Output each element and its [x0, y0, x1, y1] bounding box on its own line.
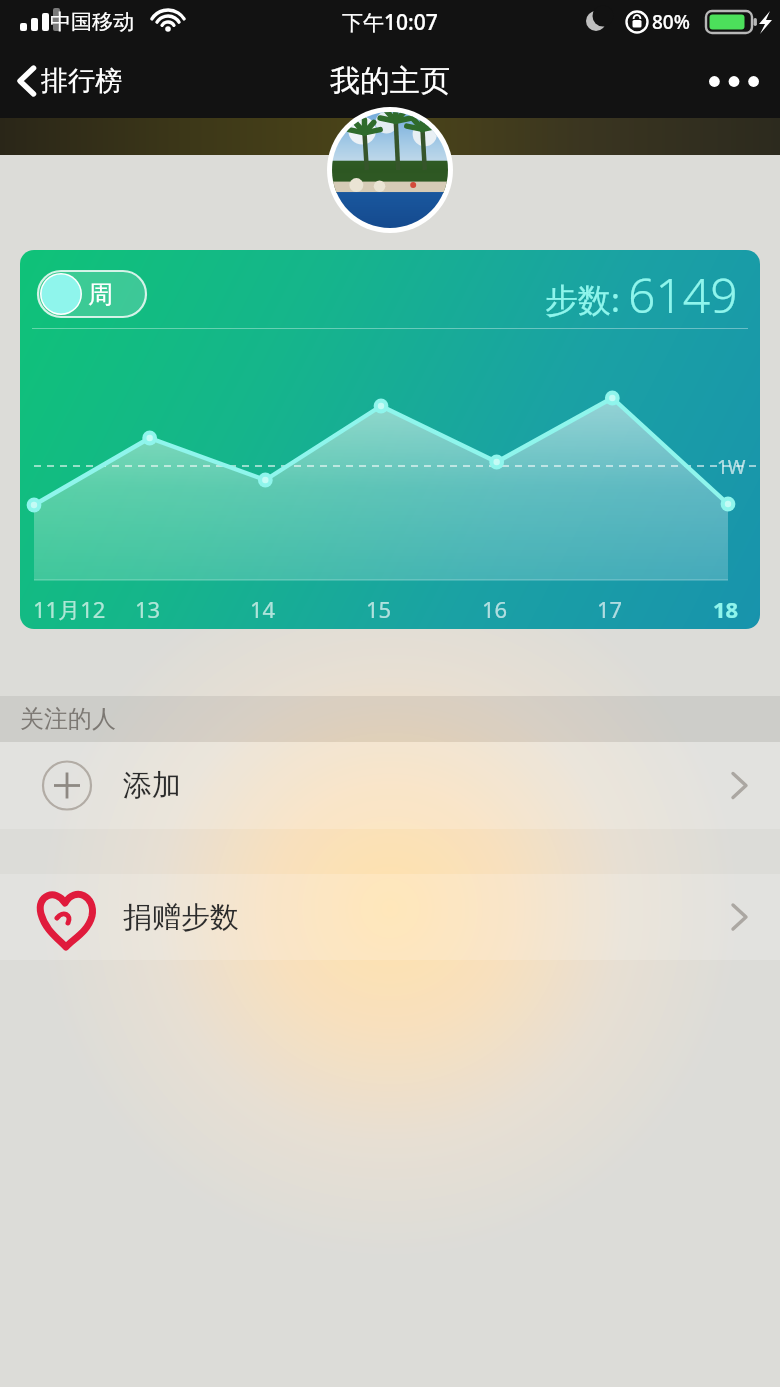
staticText: 14 — [250, 594, 276, 624]
staticText: 下午10:07 — [342, 8, 438, 37]
staticText: 中国移动 — [50, 9, 134, 35]
button[interactable]: 排行榜 — [0, 56, 136, 106]
staticText: 11月12 — [33, 594, 106, 624]
staticText: 18 — [713, 594, 739, 624]
staticText: 步数: — [545, 277, 620, 322]
button[interactable]: 添加 — [0, 742, 780, 829]
staticText: 16 — [482, 594, 508, 624]
staticText: 80% — [652, 9, 690, 35]
button[interactable]: Profile photo — [327, 107, 453, 233]
staticText: 关注的人 — [20, 704, 116, 734]
button[interactable]: 捐赠步数 — [0, 874, 780, 960]
button[interactable]: 周 — [20, 250, 760, 629]
staticText: 捐赠步数 — [123, 899, 239, 936]
staticText: 我的主页 — [330, 62, 450, 100]
staticText: 周 — [88, 279, 113, 310]
staticText: 13 — [135, 594, 161, 624]
staticText: 1W — [717, 454, 746, 480]
staticText: 排行榜 — [41, 64, 122, 98]
staticText: 15 — [366, 594, 392, 624]
button[interactable]: 周 — [38, 271, 146, 317]
button[interactable]: More options — [688, 56, 780, 107]
staticText: 17 — [597, 594, 623, 624]
staticText: 6149 — [628, 262, 738, 327]
staticText: 添加 — [123, 767, 181, 804]
